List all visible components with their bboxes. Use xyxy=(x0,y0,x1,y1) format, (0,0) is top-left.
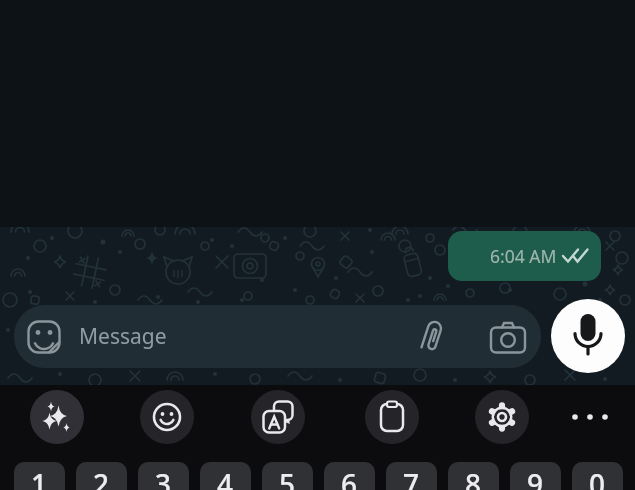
button[interactable]: 4 xyxy=(200,462,251,490)
staticText: 4 xyxy=(217,465,234,490)
staticText: Message xyxy=(79,322,167,351)
staticText: 2 xyxy=(93,465,110,490)
staticText: 5 xyxy=(279,465,296,490)
staticText: 6 xyxy=(341,465,358,490)
button[interactable] xyxy=(488,319,528,355)
button[interactable] xyxy=(412,317,452,357)
button[interactable] xyxy=(551,299,625,373)
button[interactable]: 9 xyxy=(510,462,561,490)
staticText: 1 xyxy=(31,465,48,490)
button[interactable]: 2 xyxy=(76,462,127,490)
button[interactable]: 0 xyxy=(572,462,623,490)
button[interactable]: 6 xyxy=(324,462,375,490)
button[interactable]: 7 xyxy=(386,462,437,490)
button[interactable] xyxy=(365,390,419,444)
button[interactable] xyxy=(30,390,84,444)
staticText: 8 xyxy=(465,465,482,490)
button[interactable] xyxy=(140,390,194,444)
staticText: 0 xyxy=(589,465,606,490)
button[interactable]: Message xyxy=(14,305,541,368)
staticText: 9 xyxy=(527,465,544,490)
button[interactable] xyxy=(475,390,529,444)
staticText: 3 xyxy=(155,465,172,490)
button[interactable]: 5 xyxy=(262,462,313,490)
button[interactable] xyxy=(567,401,613,433)
button[interactable]: 8 xyxy=(448,462,499,490)
staticText: 6:04 AM xyxy=(490,244,557,268)
button[interactable] xyxy=(251,390,305,444)
staticText: 7 xyxy=(403,465,420,490)
button[interactable]: 1 xyxy=(14,462,65,490)
button[interactable]: 3 xyxy=(138,462,189,490)
button[interactable] xyxy=(27,320,61,354)
